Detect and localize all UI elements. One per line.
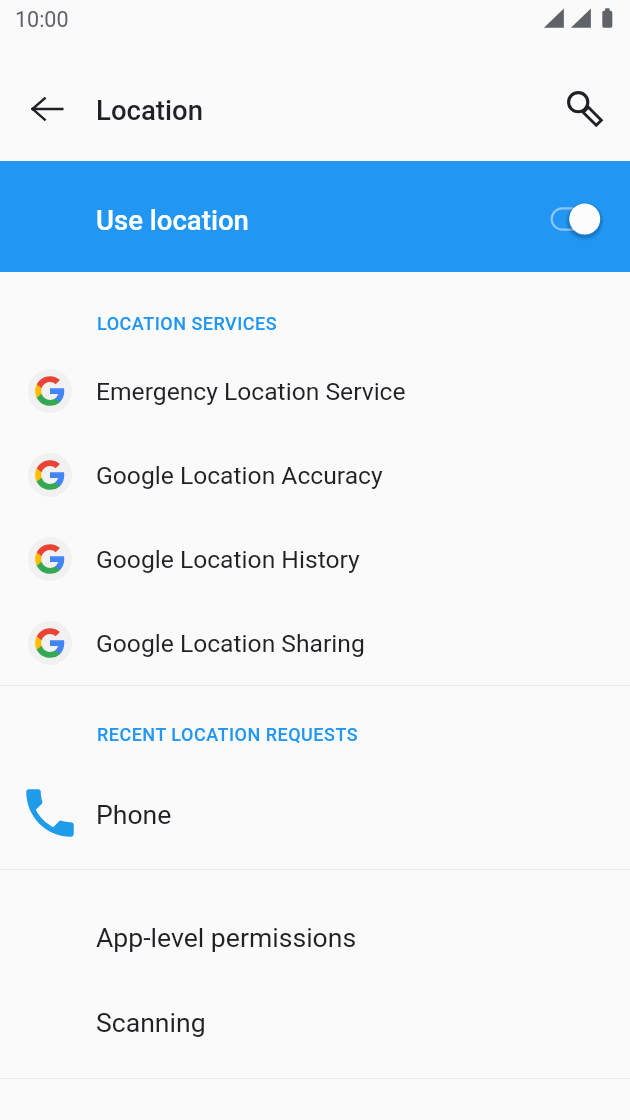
button[interactable]: Google Location History (0, 517, 630, 601)
staticText: LOCATION SERVICES (97, 313, 278, 334)
staticText: Google Location Accuracy (96, 461, 383, 490)
button[interactable]: Emergency Location Service (0, 349, 630, 433)
staticText: Google Location History (96, 545, 360, 574)
staticText: Use location (96, 204, 249, 236)
staticText: RECENT LOCATION REQUESTS (97, 724, 359, 745)
button[interactable]: Scanning (0, 980, 630, 1064)
staticText: App-level permissions (96, 922, 357, 953)
button[interactable]: Back (18, 79, 78, 139)
button[interactable]: App-level permissions (0, 895, 630, 979)
staticText: Phone (96, 799, 172, 830)
button[interactable]: Phone (0, 772, 630, 856)
button[interactable]: Google Location Accuracy (0, 433, 630, 517)
button[interactable]: Use location (0, 161, 630, 272)
staticText: 10:00 (15, 7, 69, 32)
staticText: Emergency Location Service (96, 377, 406, 406)
staticText: Google Location Sharing (96, 629, 365, 658)
button[interactable]: Google Location Sharing (0, 601, 630, 685)
staticText: Scanning (96, 1007, 206, 1038)
button[interactable]: Search (552, 81, 612, 141)
staticText: Location (96, 94, 203, 126)
